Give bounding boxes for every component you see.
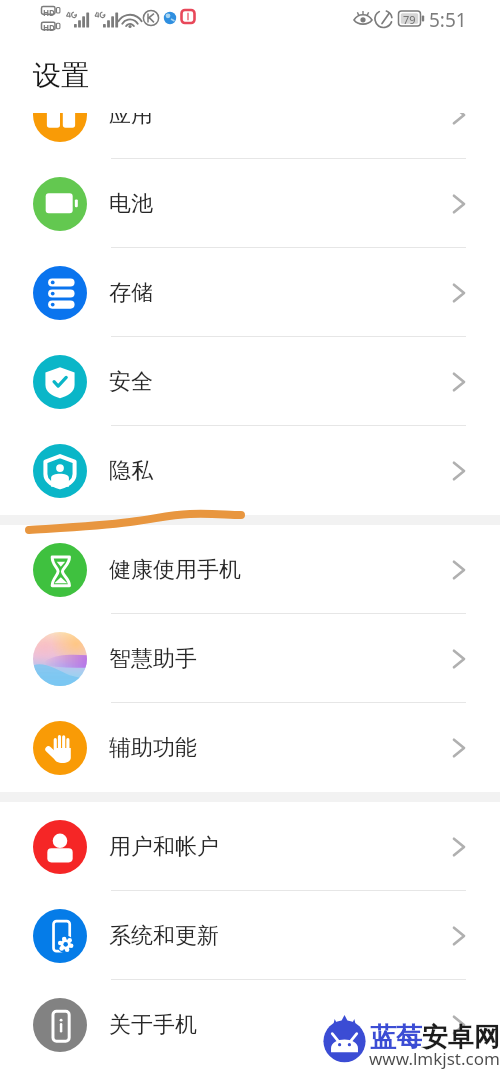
staticText: 蓝莓	[370, 1021, 422, 1054]
staticText: 辅助功能	[109, 734, 197, 762]
button[interactable]: 隐私	[0, 426, 500, 515]
button[interactable]: 关于手机	[0, 980, 500, 1069]
staticText: 应用	[109, 113, 153, 129]
staticText: 设置	[33, 58, 89, 93]
staticText: 关于手机	[109, 1011, 197, 1039]
staticText: 存储	[109, 279, 153, 307]
button[interactable]: 健康使用手机	[0, 525, 500, 614]
button[interactable]: 电池	[0, 159, 500, 248]
button[interactable]: 辅助功能	[0, 703, 500, 792]
button[interactable]: 存储	[0, 248, 500, 337]
staticText: 79	[403, 12, 416, 27]
staticText: 5:51	[429, 7, 467, 33]
staticText: 安卓网	[422, 1021, 500, 1054]
staticText: HD	[43, 7, 55, 18]
button[interactable]: 系统和更新	[0, 891, 500, 980]
staticText: 系统和更新	[109, 922, 219, 950]
button[interactable]: 应用	[0, 113, 500, 159]
staticText: HD	[43, 22, 55, 33]
button[interactable]: 安全	[0, 337, 500, 426]
staticText: 电池	[109, 190, 153, 218]
button[interactable]: 智慧助手	[0, 614, 500, 703]
staticText: 安全	[109, 368, 153, 396]
staticText: 健康使用手机	[109, 556, 241, 584]
staticText: 智慧助手	[109, 645, 197, 673]
staticText: 用户和帐户	[109, 833, 219, 861]
button[interactable]: 用户和帐户	[0, 802, 500, 891]
staticText: www.lmkjst.com	[369, 1047, 500, 1070]
staticText: 隐私	[109, 457, 153, 485]
